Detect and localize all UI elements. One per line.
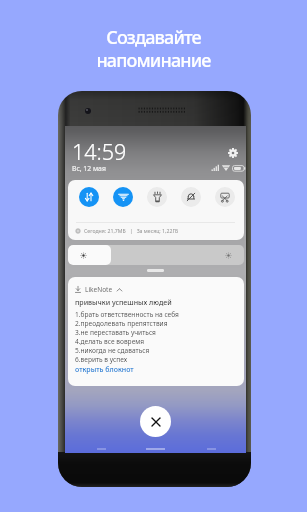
staticText: 6.верить в успех [75,355,128,364]
button[interactable] [79,187,99,207]
button[interactable]: Settings [226,146,240,160]
button[interactable]: Close [140,406,171,437]
staticText: 3.не переставать учиться [75,328,156,337]
button[interactable] [147,187,167,207]
staticText: 14:59 [72,137,127,166]
staticText: привычки успешных людей [75,298,172,308]
staticText: Сегодня: 21,7МБ | За месяц: 1,22ГБ [84,227,179,234]
staticText: открыть блокнот [75,365,134,375]
staticText: Создавайте напоминание [0,25,307,72]
button[interactable] [181,187,201,207]
button[interactable] [113,187,133,207]
button[interactable]: LikeNote [68,277,244,386]
button[interactable]: открыть блокнот [75,365,134,375]
staticText: 2.преодолевать препятствия [75,319,168,328]
staticText: Вс, 12 мая [72,164,106,173]
staticText: LikeNote [85,285,113,294]
button[interactable] [215,187,235,207]
button[interactable] [68,245,244,265]
staticText: 1.брать ответственность на себя [75,310,179,319]
staticText: 5.никогда не сдаваться [75,346,150,355]
staticText: 4.делать все вовремя [75,337,145,346]
